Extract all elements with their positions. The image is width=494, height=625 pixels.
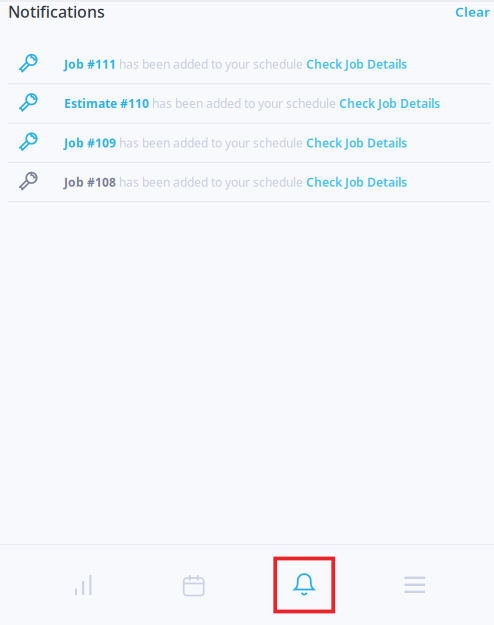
staticText: Check Job Details	[306, 174, 407, 190]
staticText: has been added to your schedule	[116, 56, 306, 72]
staticText: Check Job Details	[306, 135, 407, 151]
staticText: has been added to your schedule	[116, 174, 306, 190]
staticText: has been added to your schedule	[116, 135, 306, 151]
button[interactable]: More	[359, 557, 470, 613]
staticText: Check Job Details	[339, 95, 440, 111]
button[interactable]: Job #111	[0, 45, 494, 83]
staticText: Notifications	[8, 1, 105, 22]
staticText: has been added to your schedule	[149, 95, 339, 111]
button[interactable]: Clear	[455, 3, 490, 20]
staticText: Job #111	[64, 56, 116, 72]
button[interactable]: Job #108	[0, 163, 494, 201]
button[interactable]: Estimate #110	[0, 84, 494, 123]
staticText: Check Job Details	[306, 56, 407, 72]
button[interactable]: Job #109	[0, 124, 494, 162]
staticText: Job #108	[64, 174, 116, 190]
button[interactable]: Notifications	[249, 557, 359, 613]
button[interactable]: Schedule	[138, 557, 249, 613]
staticText: Job #109	[64, 135, 116, 151]
staticText: Clear	[455, 3, 490, 20]
button[interactable]: Dashboard	[28, 557, 138, 613]
staticText: Estimate #110	[64, 95, 149, 111]
